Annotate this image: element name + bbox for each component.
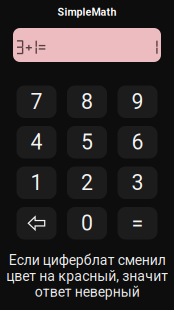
staticText: 6 bbox=[131, 130, 143, 155]
button[interactable]: Backspace bbox=[16, 207, 56, 239]
staticText: = bbox=[131, 211, 143, 236]
staticText: 8 bbox=[81, 89, 93, 114]
staticText: ответ неверный bbox=[34, 284, 139, 300]
staticText: SimpleMath bbox=[57, 6, 116, 18]
button[interactable]: 3 bbox=[117, 166, 157, 199]
button[interactable]: 6 bbox=[117, 126, 157, 158]
staticText: 2 bbox=[81, 170, 93, 195]
button[interactable]: 7 bbox=[16, 85, 56, 118]
button[interactable]: 4 bbox=[16, 126, 56, 158]
staticText: цвет на красный, значит bbox=[6, 268, 168, 284]
button[interactable]: 5 bbox=[67, 126, 107, 158]
staticText: Если циферблат сменил bbox=[8, 252, 165, 268]
button[interactable]: 0 bbox=[67, 207, 107, 239]
button[interactable]: 9 bbox=[117, 85, 157, 118]
button[interactable]: 1 bbox=[16, 166, 56, 199]
staticText: 1 bbox=[30, 170, 42, 195]
staticText: 4 bbox=[30, 130, 42, 155]
staticText: 9 bbox=[131, 89, 143, 114]
button[interactable]: 2 bbox=[67, 166, 107, 199]
staticText: 5 bbox=[81, 130, 93, 155]
button[interactable]: = bbox=[117, 207, 157, 239]
staticText: 7 bbox=[30, 89, 42, 114]
staticText: 3 bbox=[131, 170, 143, 195]
staticText: 0 bbox=[81, 211, 93, 236]
button[interactable]: 8 bbox=[67, 85, 107, 118]
